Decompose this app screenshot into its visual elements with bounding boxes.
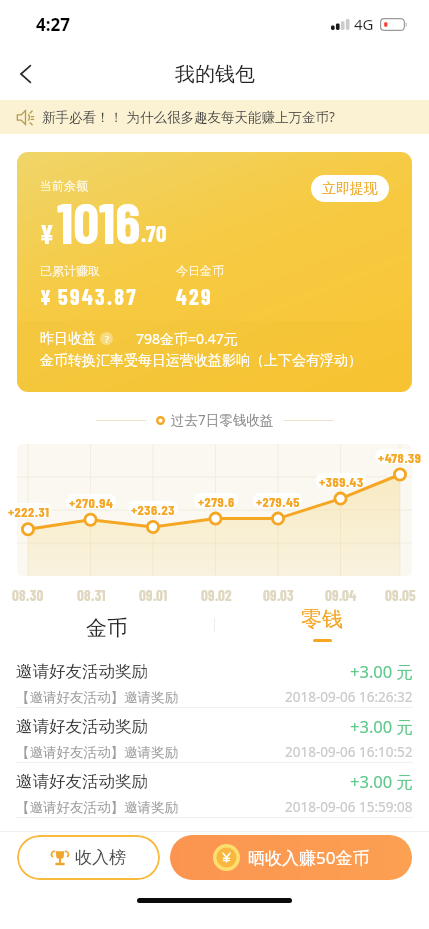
staticText: +279.6: [198, 493, 235, 508]
staticText: 5943.87: [58, 283, 138, 309]
button[interactable]: Help: [100, 332, 113, 345]
staticText: .70: [141, 219, 167, 247]
staticText: ?: [105, 333, 109, 345]
staticText: ¥: [40, 218, 54, 249]
staticText: 2018-09-06 16:10:52: [285, 743, 413, 761]
staticText: 过去7日零钱收益: [171, 411, 274, 429]
staticText: 晒收入赚50金币: [248, 846, 370, 869]
button[interactable]: 金币: [56, 606, 158, 650]
staticText: 09.02: [201, 586, 232, 604]
staticText: 我的钱包: [175, 62, 255, 87]
staticText: 【邀请好友活动】邀请奖励: [16, 744, 178, 761]
staticText: ¥: [40, 284, 52, 309]
staticText: 金币转换汇率受每日运营收益影响（上下会有浮动）: [40, 352, 362, 370]
staticText: 4G: [354, 14, 374, 34]
button[interactable]: Back: [0, 48, 52, 100]
staticText: 4:27: [36, 13, 70, 36]
staticText: 09.01: [139, 586, 168, 604]
staticText: 零钱: [301, 606, 343, 632]
staticText: +270.94: [69, 494, 114, 509]
staticText: 09.04: [325, 586, 357, 604]
staticText: +3.00 元: [350, 715, 413, 738]
staticText: 798金币=0.47元: [136, 329, 238, 348]
staticText: +478.39: [378, 449, 422, 464]
staticText: 429: [176, 283, 214, 309]
staticText: 邀请好友活动奖励: [16, 771, 148, 792]
staticText: 【邀请好友活动】邀请奖励: [16, 799, 178, 816]
staticText: 09.05: [385, 586, 416, 604]
staticText: 金币: [86, 615, 128, 641]
staticText: 2018-09-06 16:26:32: [285, 688, 413, 706]
staticText: 已累计赚取: [40, 263, 100, 278]
staticText: +279.45: [256, 493, 301, 508]
staticText: 今日金币: [176, 263, 224, 278]
button[interactable]: 晒收入赚50金币: [170, 835, 412, 880]
staticText: 1016: [57, 187, 141, 255]
button[interactable]: 邀请好友活动奖励: [0, 708, 429, 763]
staticText: 【邀请好友活动】邀请奖励: [16, 689, 178, 706]
staticText: 昨日收益: [40, 330, 96, 348]
staticText: 08.30: [12, 586, 44, 604]
button[interactable]: 邀请好友活动奖励: [0, 653, 429, 708]
staticText: +369.43: [319, 473, 364, 488]
staticText: +3.00 元: [350, 660, 413, 683]
button[interactable]: 邀请好友活动奖励: [0, 763, 429, 818]
button[interactable]: 零钱: [271, 606, 373, 656]
staticText: 收入榜: [75, 847, 126, 868]
other: Announcement: [16, 108, 35, 127]
staticText: 当前余额: [40, 178, 88, 193]
staticText: +236.23: [131, 501, 175, 516]
staticText: 新手必看！！ 为什么很多趣友每天能赚上万金币?: [42, 108, 335, 126]
button[interactable]: Announcement: [16, 100, 429, 134]
staticText: 08.31: [77, 586, 106, 604]
button[interactable]: 立即提现: [311, 175, 389, 202]
staticText: 2018-09-06 15:59:08: [285, 798, 413, 816]
staticText: 邀请好友活动奖励: [16, 716, 148, 737]
staticText: +222.31: [8, 503, 50, 518]
staticText: 09.03: [263, 586, 294, 604]
staticText: 邀请好友活动奖励: [16, 661, 148, 682]
button[interactable]: 收入榜: [17, 835, 160, 880]
staticText: +3.00 元: [350, 770, 413, 793]
staticText: 立即提现: [322, 180, 378, 198]
